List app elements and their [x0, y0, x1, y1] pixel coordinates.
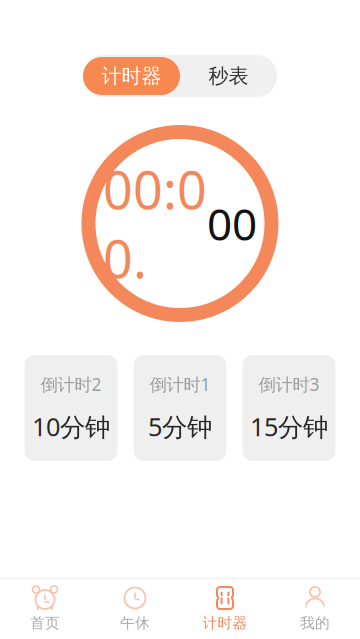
- staticText: 计时器: [202, 614, 247, 632]
- button[interactable]: 倒计时2: [24, 355, 117, 461]
- staticText: 倒计时3: [258, 373, 319, 396]
- button[interactable]: 秒表: [180, 57, 277, 95]
- staticText: 00: [207, 194, 257, 253]
- button[interactable]: 我的: [270, 582, 360, 636]
- button[interactable]: 计时器: [180, 582, 270, 636]
- button[interactable]: 午休: [90, 582, 180, 636]
- button[interactable]: 计时器: [83, 57, 180, 95]
- staticText: 我的: [300, 614, 330, 632]
- staticText: 5分钟: [148, 410, 212, 443]
- staticText: 倒计时2: [40, 373, 101, 396]
- button[interactable]: 倒计时1: [133, 355, 226, 461]
- staticText: 15分钟: [250, 410, 328, 443]
- staticText: 计时器: [101, 64, 161, 88]
- staticText: 午休: [120, 614, 150, 632]
- button[interactable]: 首页: [0, 582, 90, 636]
- staticText: 倒计时1: [149, 373, 210, 396]
- staticText: 秒表: [208, 64, 248, 88]
- staticText: 首页: [30, 614, 60, 632]
- staticText: 10分钟: [32, 410, 110, 443]
- staticText: 00:00.: [103, 154, 207, 292]
- button[interactable]: 倒计时3: [242, 355, 335, 461]
